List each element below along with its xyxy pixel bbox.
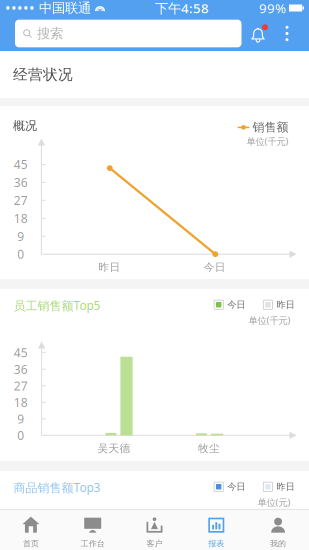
- staticText: 昨日: [276, 299, 294, 310]
- button[interactable]: Notifications: [248, 22, 270, 44]
- button[interactable]: More options: [277, 22, 297, 44]
- staticText: 牧尘: [198, 442, 220, 455]
- staticText: 昨日: [276, 481, 294, 492]
- staticText: 36: [14, 174, 28, 190]
- staticText: 18: [14, 394, 28, 410]
- staticText: 销售额: [252, 120, 288, 135]
- staticText: 报表: [208, 539, 224, 548]
- button[interactable]: 首页: [0, 509, 62, 550]
- button[interactable]: 工作台: [62, 509, 124, 550]
- button[interactable]: 我的: [247, 509, 309, 550]
- button[interactable]: 搜索: [15, 20, 241, 47]
- staticText: 概况: [13, 118, 37, 133]
- staticText: 45: [14, 345, 28, 361]
- staticText: 经营状况: [13, 65, 73, 83]
- staticText: 首页: [23, 539, 39, 548]
- staticText: 0: [17, 246, 24, 262]
- staticText: 单位(元): [257, 496, 290, 508]
- staticText: 我的: [270, 539, 286, 548]
- staticText: 单位(千元): [248, 314, 290, 326]
- staticText: 45: [14, 156, 28, 172]
- staticText: 今日: [204, 261, 226, 274]
- staticText: •••••: [5, 0, 35, 18]
- staticText: 下午4:58: [155, 0, 209, 17]
- staticText: 99%: [259, 0, 286, 17]
- staticText: 9: [17, 411, 24, 427]
- staticText: 商品销售额Top3: [13, 479, 100, 495]
- staticText: 昨日: [98, 261, 120, 274]
- staticText: 今日: [227, 299, 245, 310]
- staticText: 中国联通: [35, 0, 95, 16]
- button[interactable]: 客户: [124, 509, 185, 550]
- staticText: 27: [14, 378, 28, 394]
- staticText: 搜索: [37, 25, 63, 42]
- staticText: 客户: [146, 539, 162, 548]
- staticText: 18: [14, 210, 28, 226]
- staticText: 员工销售额Top5: [13, 297, 100, 313]
- staticText: 今日: [227, 481, 245, 492]
- button[interactable]: 报表: [185, 509, 247, 550]
- staticText: 吴天德: [97, 442, 130, 455]
- staticText: 9: [17, 228, 24, 244]
- staticText: 27: [14, 192, 28, 208]
- staticText: 36: [14, 361, 28, 377]
- staticText: 单位(千元): [246, 135, 288, 147]
- staticText: 0: [17, 427, 24, 443]
- staticText: 工作台: [81, 539, 105, 548]
